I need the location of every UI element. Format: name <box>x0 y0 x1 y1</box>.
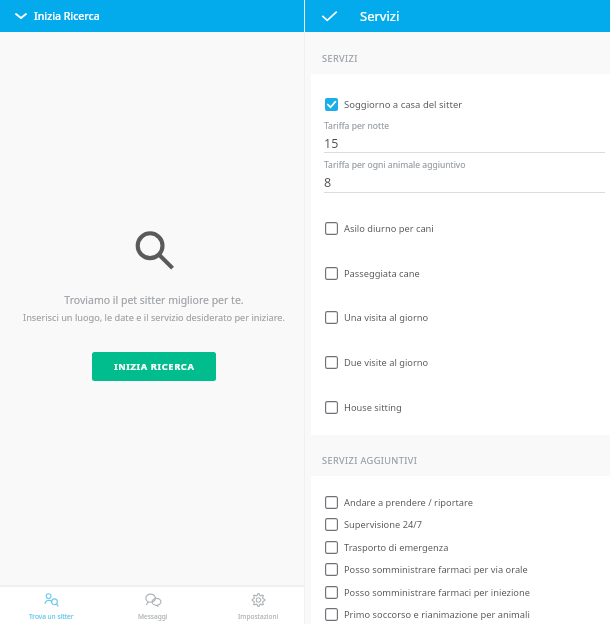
staticText: House sitting <box>344 401 402 414</box>
staticText: INIZIA RICERCA <box>114 360 195 373</box>
staticText: SERVIZI <box>322 52 358 65</box>
staticText: Asilo diurno per cani <box>344 222 434 235</box>
button[interactable]: Trova un sitter <box>0 587 102 624</box>
staticText: Impostazioni <box>238 612 279 621</box>
staticText: Inizia Ricerca <box>34 9 100 23</box>
staticText: Passeggiata cane <box>344 267 420 280</box>
staticText: Primo soccorso e rianimazione per animal… <box>344 608 530 621</box>
staticText: Trova un sitter <box>29 612 74 621</box>
staticText: Due visite al giorno <box>344 356 429 369</box>
staticText: SERVIZI AGGIUNTIVI <box>322 454 418 467</box>
button[interactable]: Espandi <box>0 0 304 32</box>
button[interactable]: Passeggiata cane <box>311 267 610 280</box>
button[interactable]: Soggiorno a casa del sitter <box>311 98 610 111</box>
staticText: Posso somministrare farmaci per via oral… <box>344 563 528 576</box>
staticText: Servizi <box>360 7 400 25</box>
button[interactable]: Messaggi <box>102 587 204 624</box>
staticText: Posso somministrare farmaci per iniezion… <box>344 586 530 599</box>
staticText: Messaggi <box>138 612 168 621</box>
staticText: Inserisci un luogo, le date e il servizi… <box>23 311 285 324</box>
staticText: Una visita al giorno <box>344 311 429 324</box>
staticText: Trasporto di emergenza <box>344 541 449 554</box>
staticText: Tariffa per notte <box>324 120 390 132</box>
staticText: Soggiorno a casa del sitter <box>344 98 463 111</box>
button[interactable]: Conferma <box>322 9 337 24</box>
button[interactable]: Trasporto di emergenza <box>311 541 610 554</box>
button[interactable]: 8 <box>324 174 332 191</box>
button[interactable]: Primo soccorso e rianimazione per animal… <box>311 608 610 621</box>
button[interactable]: House sitting <box>311 401 610 414</box>
button[interactable]: INIZIA RICERCA <box>92 352 216 381</box>
other: Espandi <box>15 13 27 19</box>
button[interactable]: Posso somministrare farmaci per iniezion… <box>311 586 610 599</box>
button[interactable]: 15 <box>324 135 339 152</box>
staticText: Andare a prendere / riportare <box>344 496 473 509</box>
button[interactable]: Due visite al giorno <box>311 356 610 369</box>
staticText: Supervisione 24/7 <box>344 518 423 531</box>
button[interactable]: Una visita al giorno <box>311 311 610 324</box>
staticText: Troviamo il pet sitter migliore per te. <box>64 293 244 307</box>
staticText: Tariffa per ogni animale aggiuntivo <box>324 159 466 171</box>
button[interactable]: Impostazioni <box>207 587 309 624</box>
button[interactable]: Asilo diurno per cani <box>311 222 610 235</box>
button[interactable]: Supervisione 24/7 <box>311 518 610 531</box>
button[interactable]: Posso somministrare farmaci per via oral… <box>311 563 610 576</box>
button[interactable]: Andare a prendere / riportare <box>311 496 610 509</box>
